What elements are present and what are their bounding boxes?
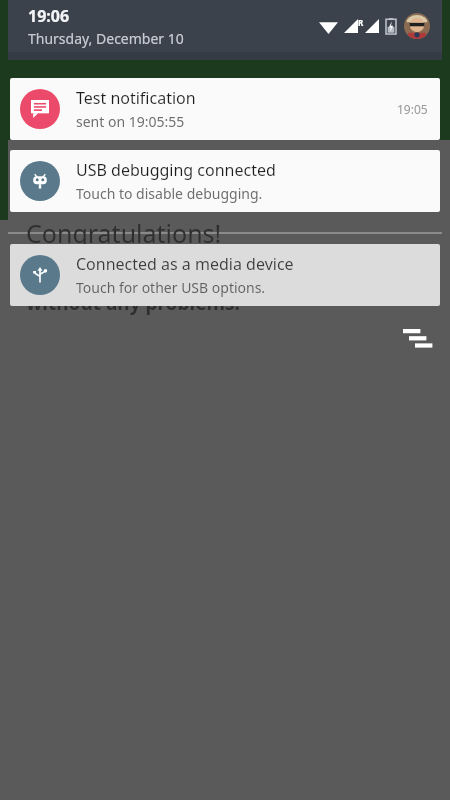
staticText: Touch to disable debugging. bbox=[76, 184, 263, 203]
staticText: USB debugging connected bbox=[76, 159, 276, 181]
staticText: 19:05 bbox=[397, 101, 428, 117]
staticText: sent on 19:05:55 bbox=[76, 112, 185, 131]
button[interactable]: Test notification bbox=[10, 78, 440, 140]
staticText: Test notification bbox=[76, 87, 196, 109]
button[interactable]: Connected as a media device bbox=[10, 244, 440, 306]
staticText: without any problems. bbox=[26, 290, 240, 316]
staticText: Connected as a media device bbox=[76, 253, 294, 275]
staticText: Thursday, December 10 bbox=[28, 29, 184, 48]
button[interactable]: USB debugging connected bbox=[10, 150, 440, 212]
staticText: Touch for other USB options. bbox=[76, 278, 266, 297]
button[interactable]: Clear all notifications bbox=[396, 322, 440, 358]
staticText: 19:06 bbox=[28, 5, 70, 27]
staticText: R bbox=[358, 17, 364, 28]
staticText: Congratulations! bbox=[26, 216, 222, 250]
